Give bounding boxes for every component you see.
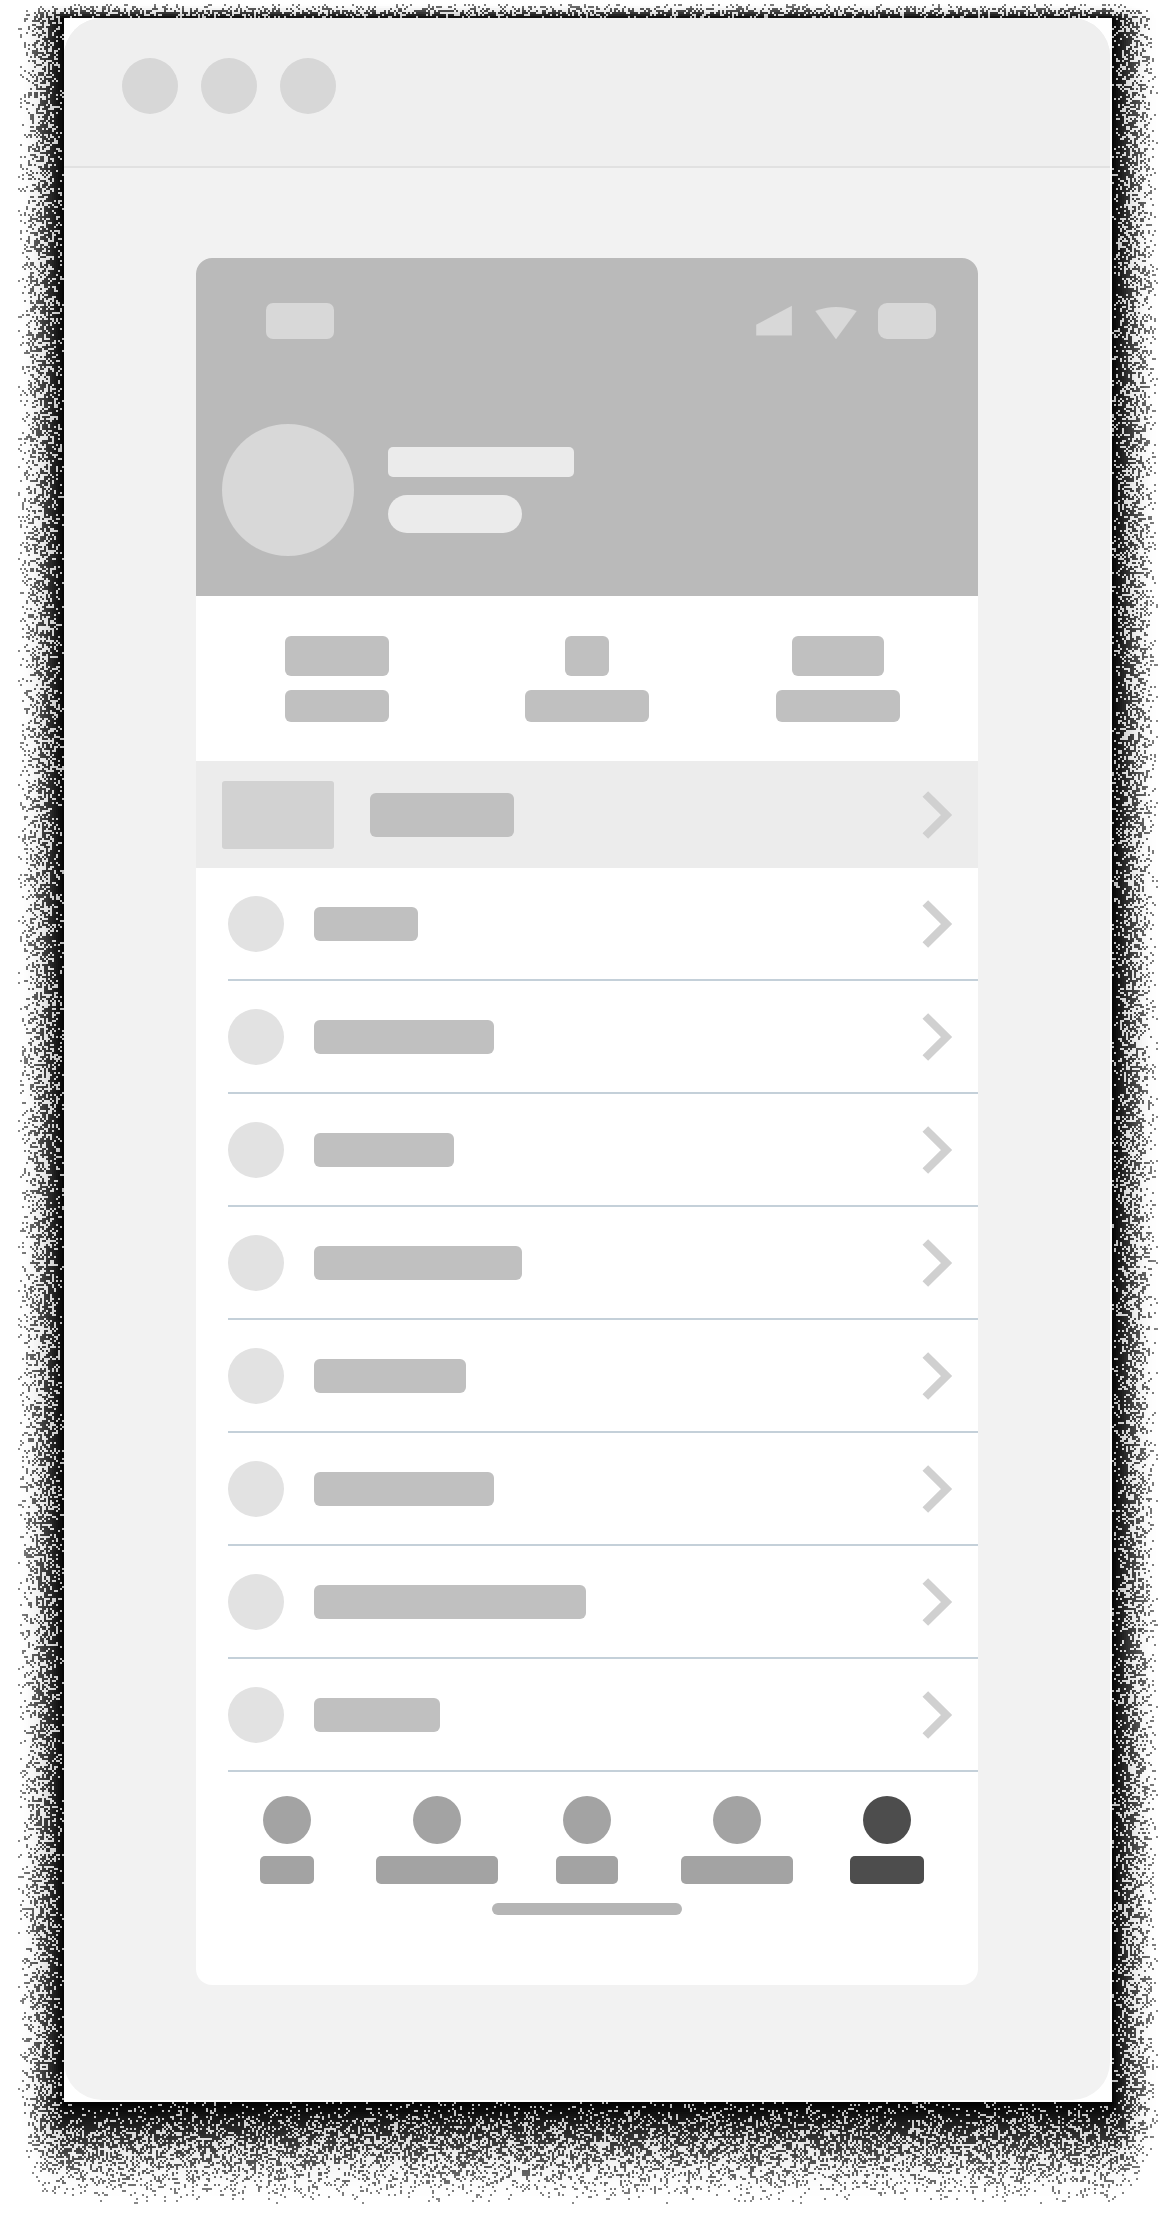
button[interactable]: Open item — [196, 1433, 978, 1544]
button[interactable]: Messages — [664, 1796, 810, 1884]
other: Open item — [920, 1350, 954, 1402]
other: Open item — [920, 1689, 954, 1741]
button[interactable] — [728, 636, 948, 722]
button[interactable]: Explore — [364, 1796, 510, 1884]
other: Open item — [920, 1576, 954, 1628]
button[interactable]: Maximize — [280, 58, 336, 114]
button[interactable]: Open item — [196, 1546, 978, 1657]
other: Wi-Fi — [814, 302, 858, 340]
button[interactable]: Open item — [196, 761, 978, 868]
other: Open item — [920, 1463, 954, 1515]
button[interactable]: Profile photo — [222, 424, 354, 556]
other: Open item — [920, 1124, 954, 1176]
other: Open item — [920, 1011, 954, 1063]
button[interactable] — [227, 636, 447, 722]
button[interactable]: Open item — [196, 1659, 978, 1770]
button[interactable]: Close — [122, 58, 178, 114]
other: Battery — [878, 303, 936, 339]
button[interactable] — [477, 636, 697, 722]
button[interactable]: Open item — [196, 1207, 978, 1318]
button[interactable]: Minimize — [201, 58, 257, 114]
button[interactable]: Add — [514, 1796, 660, 1884]
button[interactable]: Profile — [814, 1796, 960, 1884]
other: Open item — [920, 789, 954, 841]
button[interactable]: Home — [214, 1796, 360, 1884]
other: Cellular signal — [752, 302, 794, 340]
other: Open item — [920, 898, 954, 950]
button[interactable]: Open item — [196, 981, 978, 1092]
button[interactable]: Open item — [196, 1320, 978, 1431]
button[interactable]: Open item — [196, 868, 978, 979]
other: Open item — [920, 1237, 954, 1289]
button[interactable]: Open item — [196, 1094, 978, 1205]
